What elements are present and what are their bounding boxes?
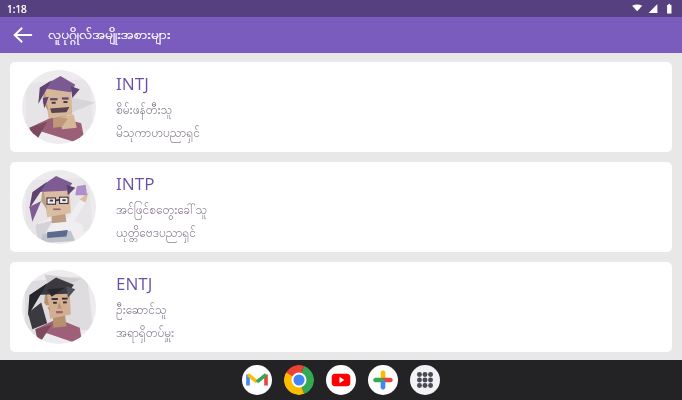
button[interactable]: ENTJ bbox=[10, 262, 672, 352]
staticText: အရာရှိတပ်မှူး bbox=[116, 325, 175, 343]
button[interactable]: INTP bbox=[10, 162, 672, 252]
button[interactable]: Google Photos bbox=[368, 365, 398, 395]
button[interactable]: Back bbox=[8, 20, 38, 50]
staticText: လူပုဂ္ဂိုလ်အမျိုးအစားများ bbox=[48, 25, 171, 46]
staticText: မိသုကာဟပညာရှင် bbox=[116, 125, 200, 143]
staticText: ယုတ္တိဗေဒပညာရှင် bbox=[116, 225, 196, 243]
staticText: INTJ bbox=[116, 72, 149, 95]
button[interactable]: Chrome bbox=[284, 365, 314, 395]
staticText: စိမ်းဖန်တီးသူ bbox=[116, 102, 173, 120]
staticText: အင်ဖြင်စတွေးခေါ်သူ bbox=[116, 202, 208, 220]
button[interactable]: YouTube bbox=[326, 365, 356, 395]
staticText: 1:18 bbox=[7, 2, 27, 16]
staticText: ENTJ bbox=[116, 272, 153, 295]
button[interactable]: INTJ bbox=[10, 62, 672, 152]
button[interactable]: All apps bbox=[410, 365, 440, 395]
staticText: ဦးဆောင်သူ bbox=[116, 302, 167, 320]
staticText: INTP bbox=[116, 172, 155, 195]
button[interactable]: Gmail bbox=[242, 365, 272, 395]
